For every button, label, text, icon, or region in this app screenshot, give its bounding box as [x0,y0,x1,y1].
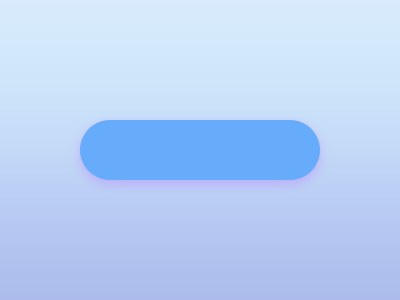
button[interactable]: Continue [80,120,320,180]
